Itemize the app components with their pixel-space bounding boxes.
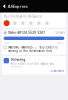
staticText: Your order is on the way to you <box>11 62 55 65</box>
staticText: Order #8124 5520 3341 <box>8 31 45 34</box>
staticText: Delivering <box>11 58 26 61</box>
staticText: Delivered <box>57 42 64 44</box>
button[interactable]: View more <box>50 69 64 73</box>
button[interactable]: Back <box>0 1 8 12</box>
staticText: Est. arrival Nov 18 <box>11 66 23 68</box>
staticText: Your feedback for AliExpress <box>4 15 42 18</box>
staticText: View more <box>50 69 64 73</box>
staticText: Details <box>55 31 64 34</box>
staticText: Shipped <box>4 42 10 44</box>
button[interactable] <box>4 37 64 40</box>
staticText: AliExpress <box>8 4 28 9</box>
staticText: WAITING MARKETS — Your Order is arriving… <box>8 46 57 53</box>
